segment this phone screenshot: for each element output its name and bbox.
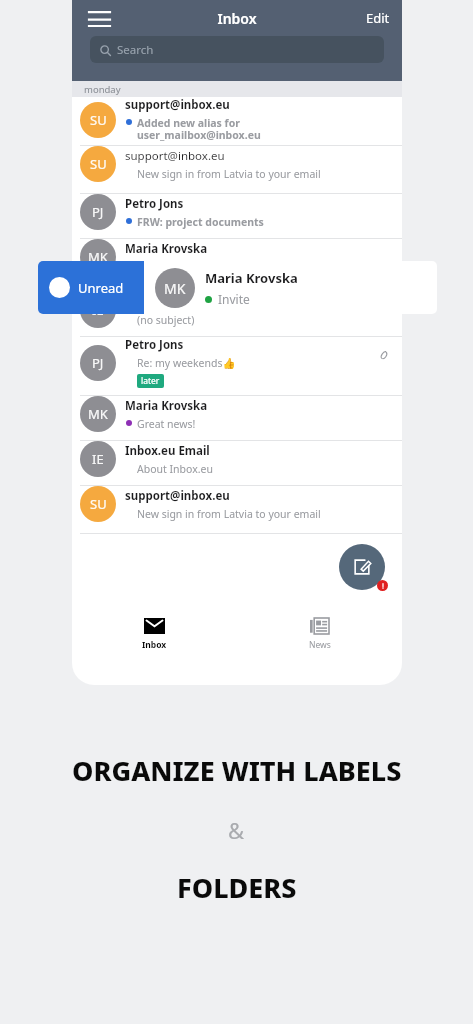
staticText: Petro Jons [125, 196, 184, 212]
staticText: Maria Krovska [125, 241, 208, 257]
staticText: Maria Krovska [205, 269, 298, 287]
staticText: About Inbox.eu [137, 462, 213, 476]
staticText: Edit [366, 9, 390, 27]
staticText: support@inbox.eu [125, 97, 230, 113]
staticText: News [309, 639, 331, 651]
staticText: SU [90, 155, 107, 173]
staticText: IE [92, 450, 104, 468]
button[interactable]: SU [72, 146, 402, 193]
staticText: monday [84, 83, 121, 96]
staticText: MK [164, 279, 186, 298]
staticText: MK [88, 405, 108, 423]
staticText: Inbox [217, 9, 257, 28]
staticText: New sign in from Latvia to your email [137, 167, 321, 181]
staticText: Petro Jons [125, 337, 184, 353]
staticText: Inbox.eu Email [125, 443, 210, 459]
staticText: FOLDERS [177, 869, 297, 906]
staticText: SU [90, 111, 107, 129]
staticText: Invite [218, 291, 250, 307]
staticText: IE [92, 301, 104, 319]
staticText: FRW: project documents [137, 215, 264, 229]
staticText: Added new alias for user_mailbox@inbox.e… [137, 116, 261, 142]
staticText: support@inbox.eu [125, 488, 230, 504]
button[interactable]: Edit [364, 5, 392, 31]
button[interactable]: IE [72, 292, 402, 336]
button[interactable]: SU [72, 97, 402, 145]
staticText: Invite [137, 260, 165, 274]
staticText: PJ [92, 354, 104, 372]
staticText: & [228, 815, 245, 845]
staticText: Great news! [137, 417, 196, 431]
button[interactable]: PJ [72, 194, 402, 238]
staticText: MK [88, 248, 108, 266]
button[interactable]: Compose [339, 544, 385, 590]
button[interactable]: Unread [38, 261, 144, 314]
staticText: ORGANIZE WITH LABELS [72, 752, 402, 789]
button[interactable]: MK [72, 239, 402, 291]
button[interactable]: News [237, 612, 402, 657]
staticText: Search [117, 42, 154, 58]
staticText: SU [90, 495, 107, 513]
staticText: support@inbox.eu [125, 148, 225, 164]
staticText: Unread [78, 279, 124, 297]
staticText: Maria Krovska [125, 398, 208, 414]
staticText: Re: my weekends👍 [137, 356, 236, 370]
staticText: PJ [92, 203, 104, 221]
button[interactable]: PJ [72, 337, 402, 395]
button[interactable]: MK [72, 396, 402, 440]
button[interactable]: IE [72, 441, 402, 485]
button[interactable]: Menu [82, 1, 116, 35]
button[interactable]: Inbox [72, 612, 237, 657]
button[interactable]: SU [72, 486, 402, 533]
staticText: Inbox [142, 639, 167, 651]
staticText: New sign in from Latvia to your email [137, 507, 321, 521]
staticText: (no subject) [137, 313, 195, 327]
other: Attachment [374, 346, 392, 364]
button[interactable]: Search [90, 36, 384, 63]
staticText: later [141, 375, 160, 387]
staticText: Inbox.eu Email [125, 294, 210, 310]
